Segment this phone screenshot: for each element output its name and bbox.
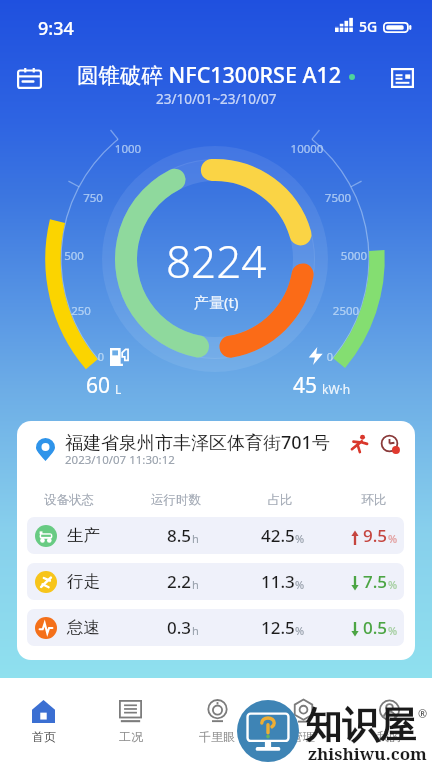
button[interactable]: 我的 bbox=[346, 678, 432, 768]
staticText: h bbox=[192, 623, 199, 638]
staticText: 占比 bbox=[240, 492, 320, 508]
button[interactable]: History bbox=[375, 429, 403, 457]
staticText: 10000 bbox=[277, 141, 337, 157]
staticText: % bbox=[388, 623, 398, 638]
staticText: zhishiwu.com bbox=[308, 742, 427, 765]
button[interactable]: 工况 bbox=[87, 678, 174, 768]
staticText: 0.5 bbox=[363, 616, 388, 639]
staticText: % bbox=[388, 531, 398, 546]
staticText: 知识屋 bbox=[305, 702, 416, 749]
staticText: 7.5 bbox=[363, 570, 388, 593]
staticText: ® bbox=[418, 706, 428, 721]
staticText: 工况 bbox=[119, 729, 143, 744]
staticText: 750 bbox=[63, 190, 123, 206]
staticText: h bbox=[192, 577, 199, 592]
button[interactable]: 行走 bbox=[27, 563, 404, 600]
staticText: 8224 bbox=[166, 231, 267, 291]
staticText: 圆锥破碎 NFC1300RSE A12 bbox=[77, 60, 342, 89]
button[interactable]: 管理 bbox=[260, 678, 346, 768]
button[interactable]: Date range bbox=[8, 57, 50, 99]
button[interactable]: 千里眼 bbox=[174, 678, 260, 768]
staticText: kW·h bbox=[322, 381, 351, 397]
staticText: 11.3 bbox=[261, 570, 295, 593]
staticText: 管理 bbox=[291, 729, 315, 744]
button[interactable]: Track bbox=[345, 429, 373, 457]
staticText: 0 bbox=[300, 349, 360, 364]
staticText: 5000 bbox=[324, 248, 384, 264]
staticText: 7500 bbox=[308, 190, 368, 206]
staticText: 42.5 bbox=[261, 524, 295, 547]
staticText: 2500 bbox=[316, 303, 376, 319]
staticText: 0.3 bbox=[167, 616, 192, 639]
button[interactable]: 首页 bbox=[0, 678, 87, 768]
staticText: h bbox=[192, 531, 199, 546]
staticText: 生产 bbox=[67, 525, 100, 546]
staticText: 2.2 bbox=[167, 570, 192, 593]
staticText: 福建省泉州市丰泽区体育街701号 bbox=[65, 430, 330, 455]
staticText: 0 bbox=[71, 349, 131, 364]
staticText: L bbox=[115, 381, 122, 397]
staticText: 9:34 bbox=[38, 16, 74, 41]
staticText: 首页 bbox=[32, 729, 56, 744]
staticText: 5G bbox=[359, 17, 378, 36]
staticText: 我的 bbox=[377, 729, 401, 744]
staticText: 产量(t) bbox=[194, 292, 239, 312]
button[interactable]: Report bbox=[381, 57, 423, 99]
staticText: 环比 bbox=[334, 492, 414, 508]
staticText: 23/10/01~23/10/07 bbox=[156, 90, 277, 108]
staticText: 250 bbox=[51, 303, 111, 319]
staticText: 9.5 bbox=[363, 524, 388, 547]
staticText: 1000 bbox=[98, 141, 158, 157]
staticText: % bbox=[295, 577, 305, 592]
staticText: 运行时数 bbox=[136, 492, 216, 508]
staticText: % bbox=[388, 577, 398, 592]
staticText: 千里眼 bbox=[199, 729, 235, 744]
staticText: % bbox=[295, 531, 305, 546]
staticText: 2023/10/07 11:30:12 bbox=[65, 452, 175, 468]
staticText: 45 bbox=[293, 371, 318, 400]
staticText: 设备状态 bbox=[29, 492, 109, 508]
staticText: 行走 bbox=[67, 571, 100, 592]
staticText: 12.5 bbox=[261, 616, 295, 639]
staticText: 500 bbox=[44, 248, 104, 264]
staticText: 怠速 bbox=[67, 617, 100, 638]
button[interactable]: 怠速 bbox=[27, 609, 404, 646]
staticText: 8.5 bbox=[167, 524, 192, 547]
staticText: 60 bbox=[86, 371, 111, 400]
staticText: % bbox=[295, 623, 305, 638]
button[interactable]: 生产 bbox=[27, 517, 404, 554]
